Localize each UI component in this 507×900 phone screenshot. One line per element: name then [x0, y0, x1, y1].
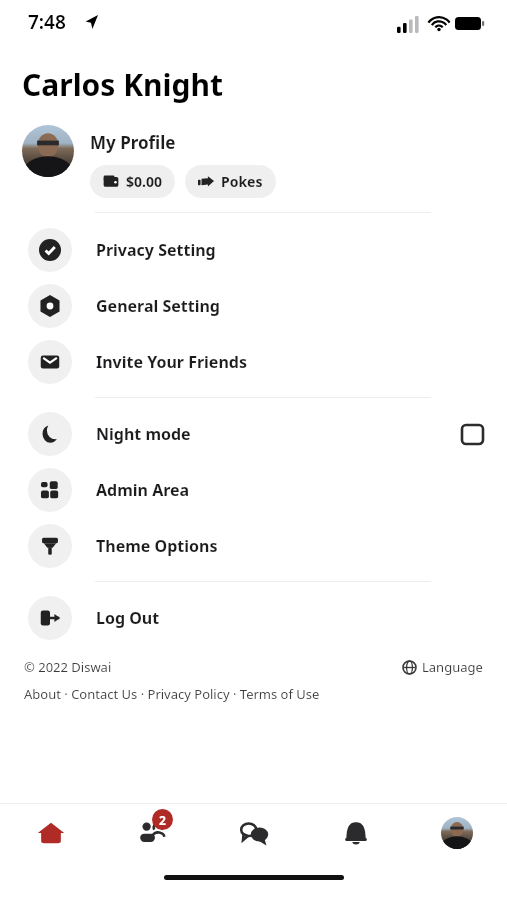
staticText: © 2022 Diswai: [24, 658, 112, 676]
staticText: Theme Options: [96, 535, 218, 557]
button[interactable]: Language: [403, 658, 483, 676]
button[interactable]: Admin Area: [0, 462, 507, 518]
staticText: About · Contact Us · Privacy Policy · Te…: [24, 685, 320, 703]
button[interactable]: Log Out: [0, 590, 507, 646]
staticText: Carlos Knight: [22, 64, 224, 105]
staticText: $0.00: [126, 172, 162, 191]
button[interactable]: Theme Options: [0, 518, 507, 574]
button[interactable]: Messages: [204, 804, 305, 862]
staticText: 7:48: [28, 9, 66, 35]
button[interactable]: Invite Your Friends: [0, 334, 507, 390]
button[interactable]: Toggle night mode: [455, 417, 489, 451]
button[interactable]: Profile photo: [22, 125, 74, 177]
button[interactable]: Pokes: [185, 165, 276, 198]
button[interactable]: My Profile: [90, 125, 176, 156]
staticText: Log Out: [96, 607, 160, 629]
button[interactable]: $0.00: [90, 165, 175, 198]
staticText: Admin Area: [96, 479, 190, 501]
button[interactable]: Night mode: [0, 406, 507, 462]
staticText: Privacy Setting: [96, 239, 216, 261]
button[interactable]: My account: [406, 804, 507, 862]
button[interactable]: About · Contact Us · Privacy Policy · Te…: [24, 685, 320, 703]
button[interactable]: Home: [0, 804, 102, 862]
staticText: 2: [159, 812, 166, 828]
staticText: Invite Your Friends: [96, 351, 247, 373]
staticText: My Profile: [90, 131, 176, 154]
staticText: Night mode: [96, 423, 191, 445]
button[interactable]: Notifications: [305, 804, 406, 862]
staticText: Language: [422, 658, 483, 676]
button[interactable]: Privacy Setting: [0, 222, 507, 278]
staticText: General Setting: [96, 295, 220, 317]
button[interactable]: Friends: [102, 804, 204, 862]
staticText: Pokes: [221, 172, 263, 191]
button[interactable]: General Setting: [0, 278, 507, 334]
